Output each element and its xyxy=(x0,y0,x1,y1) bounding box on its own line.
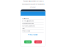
staticText: City xyxy=(22,27,25,30)
staticText: of user xyxy=(30,6,36,8)
staticText: Cancel xyxy=(36,41,41,43)
staticText: Full name xyxy=(22,17,29,20)
staticText: Save xyxy=(26,41,30,43)
button[interactable]: Save xyxy=(24,40,32,43)
button[interactable]: Cancel xyxy=(34,40,42,43)
staticText: The details and history data xyxy=(22,0,43,2)
staticText: Privacy policy xyxy=(28,33,38,36)
staticText: have been saved to the device xyxy=(21,3,44,5)
staticText: E-mail address xyxy=(22,20,34,22)
staticText: Phone number xyxy=(22,22,34,25)
button[interactable]: Privacy policy xyxy=(28,33,38,36)
staticText: Postcode xyxy=(22,30,30,32)
staticText: Street address xyxy=(22,25,35,27)
